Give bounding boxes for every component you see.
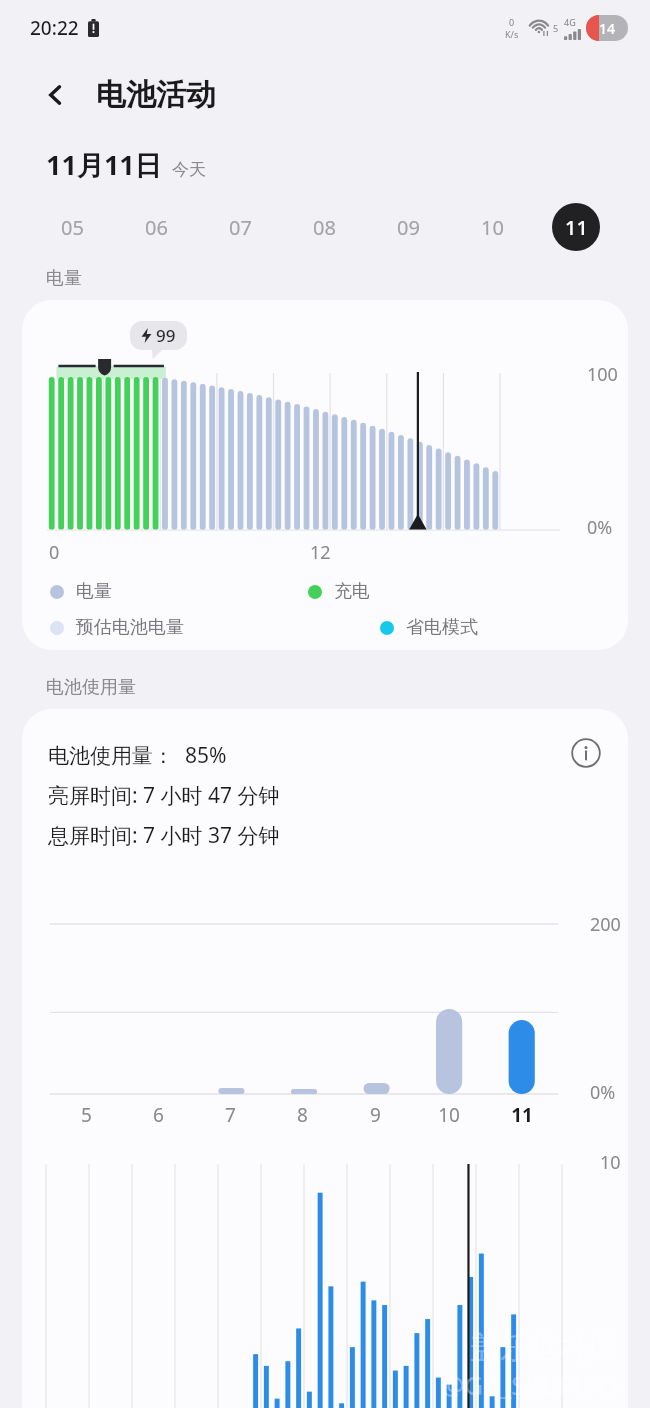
staticText: 11月11日 <box>46 146 162 183</box>
button[interactable]: Information <box>564 731 608 775</box>
staticText: 14 <box>599 19 616 38</box>
staticText: 12 <box>310 540 331 565</box>
staticText: 电量 <box>46 267 82 290</box>
staticText: 0 <box>509 16 515 28</box>
staticText: 10 <box>481 214 504 241</box>
staticText: 07 <box>229 214 252 241</box>
staticText: @GC_SKBPIPQ <box>441 1367 620 1402</box>
staticText: 11 <box>565 214 588 241</box>
staticText: 0% <box>587 515 613 540</box>
button[interactable]: Back <box>34 73 78 117</box>
staticText: 100 <box>587 362 618 387</box>
staticText: 0 <box>49 540 60 565</box>
staticText: 电池活动 <box>96 76 216 114</box>
staticText: K/s <box>505 28 519 40</box>
staticText: 11 <box>511 1102 533 1128</box>
staticText: 5 <box>81 1102 92 1128</box>
staticText: 省电模式 <box>406 616 478 639</box>
staticText: 20:22 <box>30 15 79 41</box>
button[interactable]: 10 <box>450 201 534 253</box>
staticText: 4G <box>564 16 576 28</box>
button[interactable]: 05 <box>30 201 114 253</box>
staticText: 9 <box>370 1102 381 1128</box>
button[interactable]: 07 <box>198 201 282 253</box>
button[interactable]: 99 <box>22 300 628 650</box>
staticText: 5 <box>553 22 559 34</box>
staticText: 08 <box>313 214 336 241</box>
staticText: 200 <box>590 912 621 937</box>
staticText: 10 <box>600 1150 621 1175</box>
staticText: 息屏时间: 7 小时 37 分钟 <box>48 821 280 850</box>
staticText: 10 <box>438 1102 460 1128</box>
staticText: 今天 <box>172 159 206 180</box>
button[interactable]: 08 <box>282 201 366 253</box>
staticText: 7 <box>225 1102 236 1128</box>
staticText: 充电 <box>334 580 370 603</box>
staticText: 06 <box>145 214 168 241</box>
button[interactable]: 09 <box>366 201 450 253</box>
staticText: 09 <box>397 214 420 241</box>
staticText: 电池使用量： 85% <box>48 741 227 770</box>
staticText: 8 <box>297 1102 308 1128</box>
staticText: 电池使用量 <box>46 676 136 699</box>
staticText: 99 <box>156 324 176 347</box>
staticText: 6 <box>153 1102 164 1128</box>
staticText: 亮屏时间: 7 小时 47 分钟 <box>48 781 280 810</box>
staticText: 盖乐世社区 <box>470 1329 620 1367</box>
staticText: 预估电池电量 <box>76 616 184 639</box>
staticText: 电量 <box>76 580 112 603</box>
staticText: 0% <box>590 1080 616 1105</box>
button[interactable]: 06 <box>114 201 198 253</box>
staticText: 05 <box>61 214 84 241</box>
button[interactable]: 11 <box>534 201 618 253</box>
